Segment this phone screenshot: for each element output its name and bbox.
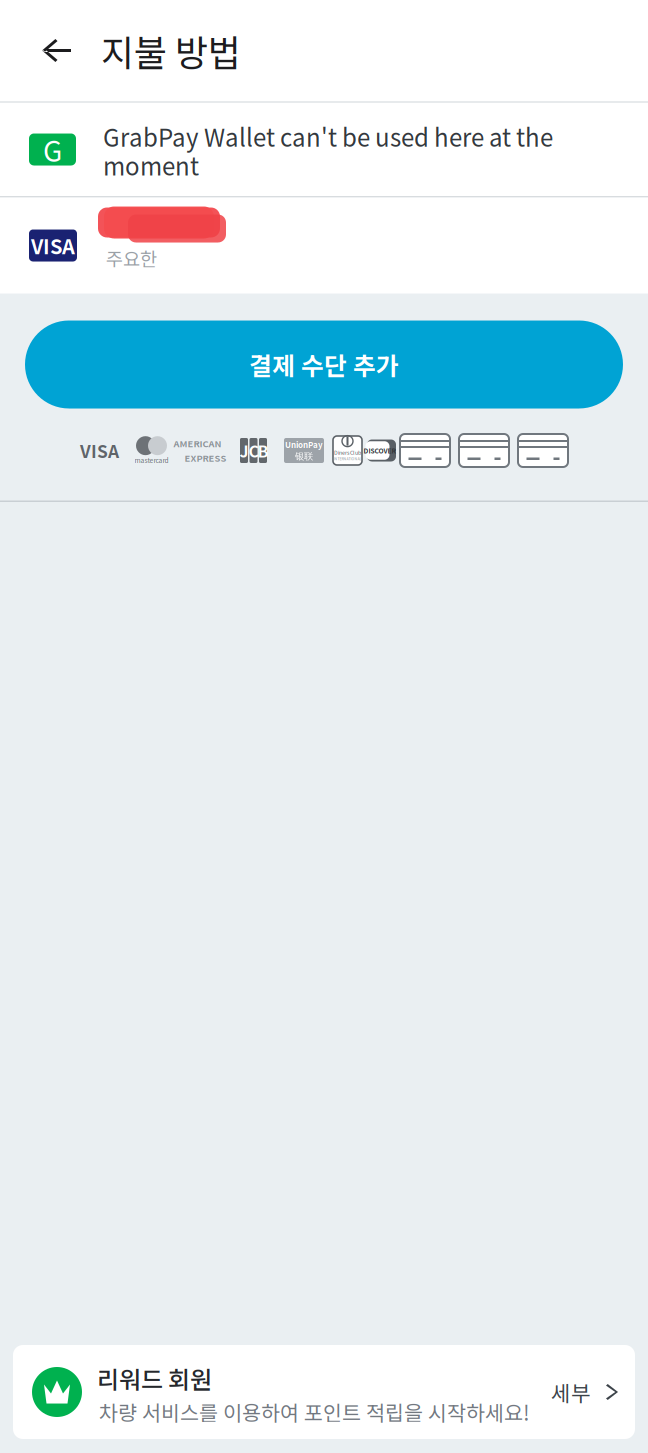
staticText: Diners Club <box>334 449 361 456</box>
staticText: VISA <box>31 231 75 260</box>
staticText: B <box>257 439 268 462</box>
staticText: 차량 서비스를 이용하여 포인트 적립을 시작하세요! <box>99 1397 530 1427</box>
staticText: EXPRESS <box>184 451 226 464</box>
button[interactable]: VISA <box>0 197 648 293</box>
staticText: VISA <box>80 438 119 463</box>
staticText: 세부 <box>551 1377 591 1407</box>
staticText: G <box>43 129 62 170</box>
staticText: GrabPay Wallet can't be used here at the… <box>103 119 553 182</box>
staticText: INTERNATIONAL <box>333 456 361 461</box>
staticText: 지불 방법 <box>101 24 241 76</box>
staticText: UnionPay <box>285 439 323 450</box>
staticText: J <box>239 439 248 462</box>
staticText: mastercard <box>134 455 168 465</box>
staticText: 리워드 회원 <box>97 1361 212 1396</box>
button[interactable]: 결제 수단 추가 <box>25 320 623 408</box>
button[interactable]: 리워드 회원 <box>13 1345 635 1439</box>
button[interactable]: G <box>0 103 648 196</box>
staticText: AMERICAN <box>173 436 221 450</box>
staticText: C <box>248 439 258 462</box>
staticText: 결제 수단 추가 <box>249 347 399 382</box>
staticText: DISCOVER <box>363 446 396 455</box>
button[interactable]: Back <box>0 0 101 101</box>
staticText: 银联 <box>295 450 313 462</box>
staticText: 주요한 <box>106 244 157 271</box>
